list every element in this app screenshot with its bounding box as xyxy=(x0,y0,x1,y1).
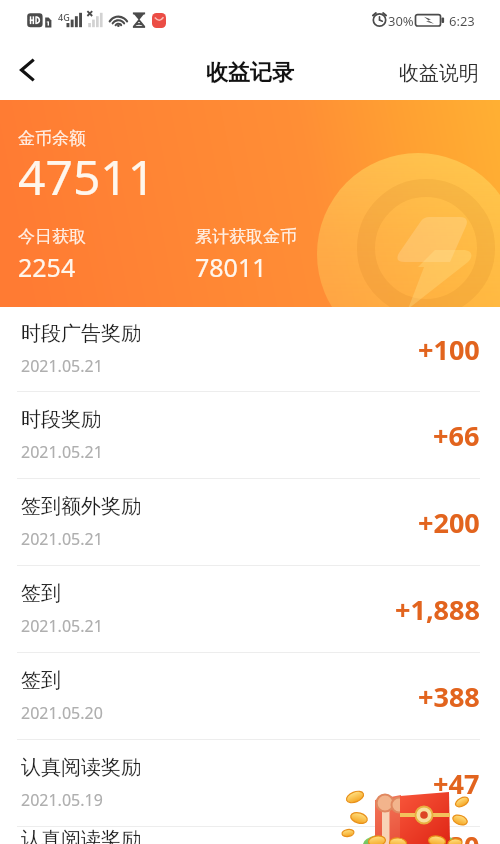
staticText: 累计获取金币 xyxy=(195,226,297,247)
staticText: 47511 xyxy=(18,144,156,209)
staticText: 78011 xyxy=(195,250,267,284)
staticText: 2021.05.21 xyxy=(21,528,103,550)
staticText: 签到 xyxy=(21,581,61,606)
staticText: 收益说明 xyxy=(399,61,479,86)
staticText: +1,888 xyxy=(395,591,480,628)
staticText: 2254 xyxy=(18,250,76,284)
staticText: 4G xyxy=(58,11,70,23)
button[interactable]: 时段奖励 xyxy=(0,392,500,479)
button[interactable]: 时段广告奖励 xyxy=(0,307,500,392)
button[interactable]: 签到 xyxy=(0,566,500,653)
staticText: +200 xyxy=(418,504,480,541)
button[interactable]: 认真阅读奖励 xyxy=(0,827,500,844)
staticText: 金币余额 xyxy=(18,128,86,149)
staticText: +100 xyxy=(418,331,480,368)
staticText: +47 xyxy=(433,765,480,802)
staticText: 签到额外奖励 xyxy=(21,494,141,519)
staticText: 2021.05.19 xyxy=(21,789,103,811)
staticText: 时段奖励 xyxy=(21,407,101,432)
staticText: 认真阅读奖励 xyxy=(21,827,141,844)
staticText: 签到 xyxy=(21,668,61,693)
staticText: 2021.05.21 xyxy=(21,615,103,637)
button[interactable]: 收益说明 xyxy=(379,48,500,93)
staticText: 收益记录 xyxy=(206,59,294,87)
button[interactable]: 签到额外奖励 xyxy=(0,479,500,566)
staticText: +30 xyxy=(433,827,480,844)
staticText: 2021.05.21 xyxy=(21,441,103,463)
staticText: 2021.05.21 xyxy=(21,355,103,377)
staticText: 30% xyxy=(388,12,414,30)
button[interactable]: 签到 xyxy=(0,653,500,740)
button[interactable]: 认真阅读奖励 xyxy=(0,740,500,827)
staticText: 认真阅读奖励 xyxy=(21,755,141,780)
staticText: 6:23 xyxy=(449,12,475,30)
staticText: 2021.05.20 xyxy=(21,702,103,724)
staticText: +388 xyxy=(418,678,480,715)
staticText: 今日获取 xyxy=(18,226,86,247)
staticText: +66 xyxy=(433,417,480,454)
button[interactable]: Back xyxy=(0,42,56,98)
staticText: 时段广告奖励 xyxy=(21,321,141,346)
